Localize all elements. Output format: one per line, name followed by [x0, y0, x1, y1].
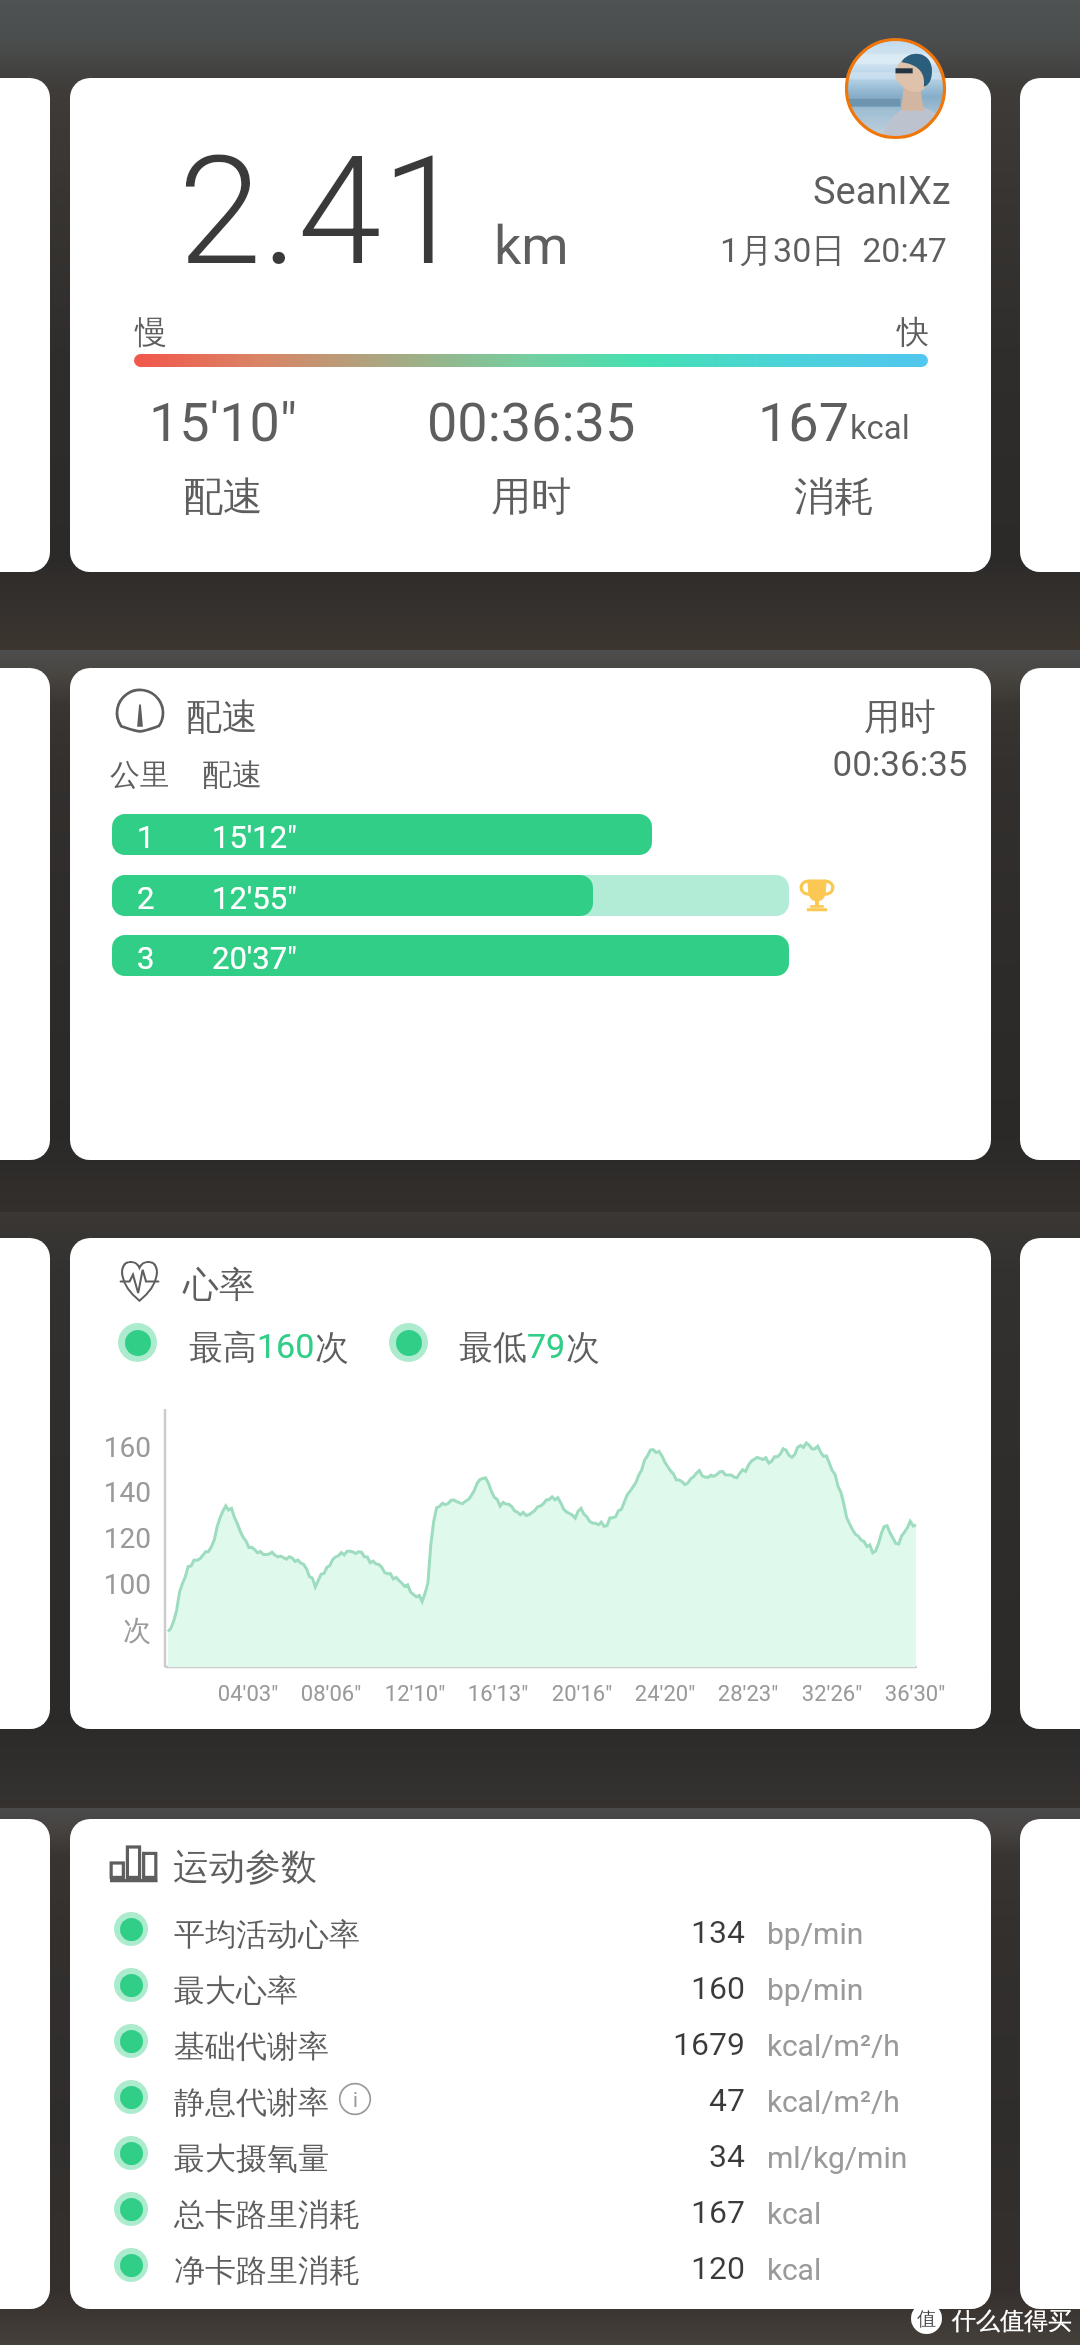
- staticText: 04'03": [188, 1681, 308, 1707]
- other: Heart rate: [117, 1258, 162, 1303]
- staticText: 配速: [202, 756, 262, 794]
- staticText: 最大摄氧量: [174, 2139, 329, 2178]
- staticText: 平均活动心率: [174, 1915, 360, 1954]
- staticText: kcal: [767, 2252, 822, 2287]
- button[interactable]: 静息代谢率: [70, 2069, 991, 2125]
- staticText: bp/min: [767, 1972, 864, 2007]
- staticText: 最大心率: [174, 1971, 298, 2010]
- button[interactable]: Pace: [70, 668, 991, 1160]
- staticText: 28'23": [688, 1681, 808, 1707]
- button[interactable]: Info: [338, 2082, 372, 2116]
- staticText: 次: [70, 1613, 151, 1648]
- staticText: SeanIXz: [813, 169, 951, 214]
- button[interactable]: 2.41: [70, 78, 991, 572]
- button[interactable]: 3: [112, 935, 789, 976]
- staticText: 慢: [135, 312, 167, 352]
- staticText: kcal/m²/h: [767, 2028, 900, 2063]
- staticText: 00:36:35: [427, 391, 636, 454]
- staticText: 47: [545, 2081, 745, 2119]
- staticText: 15'10": [149, 391, 298, 454]
- staticText: 34: [545, 2137, 745, 2175]
- staticText: kcal: [850, 408, 910, 447]
- staticText: 20'16": [522, 1681, 642, 1707]
- staticText: 用时: [800, 694, 991, 739]
- staticText: 用时: [381, 471, 681, 521]
- staticText: 1679: [545, 2025, 745, 2063]
- button[interactable]: Profile photo: [845, 38, 946, 139]
- staticText: 净卡路里消耗: [174, 2251, 360, 2290]
- staticText: bp/min: [767, 1916, 864, 1951]
- staticText: 次: [566, 1326, 600, 1369]
- other: Best lap: [795, 873, 839, 917]
- staticText: 最高: [189, 1326, 257, 1369]
- staticText: 什么值得买: [952, 2306, 1072, 2336]
- button[interactable]: 1: [112, 814, 652, 855]
- staticText: 120: [70, 1522, 151, 1555]
- staticText: 基础代谢率: [174, 2027, 329, 2066]
- staticText: 20'37": [212, 940, 298, 976]
- staticText: 160: [70, 1431, 151, 1464]
- staticText: 08'06": [271, 1681, 391, 1707]
- staticText: 值: [917, 2307, 936, 2331]
- staticText: 快: [897, 312, 929, 352]
- staticText: 静息代谢率: [174, 2083, 329, 2122]
- staticText: 次: [315, 1326, 349, 1369]
- staticText: 134: [545, 1913, 745, 1951]
- staticText: 12'10": [355, 1681, 475, 1707]
- staticText: 24'20": [605, 1681, 725, 1707]
- staticText: 100: [70, 1568, 151, 1601]
- button[interactable]: 最大心率: [70, 1957, 991, 2013]
- staticText: 运动参数: [173, 1844, 317, 1889]
- staticText: 12'55": [212, 880, 298, 916]
- staticText: 配速: [186, 694, 258, 739]
- staticText: i: [353, 2088, 358, 2111]
- other: Parameters: [110, 1843, 168, 1883]
- staticText: 心率: [183, 1262, 255, 1307]
- staticText: 120: [545, 2249, 745, 2287]
- staticText: 00:36:35: [800, 744, 991, 785]
- staticText: 79: [527, 1326, 566, 1366]
- staticText: 140: [70, 1476, 151, 1509]
- staticText: kcal/m²/h: [767, 2084, 900, 2119]
- staticText: 15'12": [212, 819, 298, 855]
- staticText: kcal: [767, 2196, 822, 2231]
- button[interactable]: Parameters: [70, 1819, 991, 2309]
- staticText: 32'26": [772, 1681, 892, 1707]
- staticText: 消耗: [684, 471, 984, 521]
- staticText: 1月30日 20:47: [720, 229, 947, 272]
- button[interactable]: 净卡路里消耗: [70, 2237, 991, 2293]
- staticText: 167: [545, 2193, 745, 2231]
- button[interactable]: 平均活动心率: [70, 1901, 991, 1957]
- staticText: 36'30": [855, 1681, 975, 1707]
- staticText: ml/kg/min: [767, 2140, 908, 2175]
- staticText: 3: [137, 940, 155, 976]
- staticText: 最低: [459, 1326, 527, 1369]
- staticText: 配速: [73, 471, 373, 521]
- staticText: 1: [137, 819, 155, 855]
- staticText: 总卡路里消耗: [174, 2195, 360, 2234]
- staticText: 公里: [110, 756, 170, 794]
- staticText: 160: [257, 1326, 315, 1366]
- button[interactable]: 基础代谢率: [70, 2013, 991, 2069]
- button[interactable]: 总卡路里消耗: [70, 2181, 991, 2237]
- staticText: 167: [758, 391, 850, 454]
- staticText: 2.41: [178, 123, 466, 300]
- button[interactable]: 2: [112, 875, 789, 916]
- button[interactable]: Heart rate: [70, 1238, 991, 1729]
- staticText: km: [494, 214, 569, 277]
- staticText: 2: [137, 880, 155, 916]
- button[interactable]: 最大摄氧量: [70, 2125, 991, 2181]
- other: Pace: [115, 690, 165, 734]
- staticText: 16'13": [438, 1681, 558, 1707]
- staticText: 160: [545, 1969, 745, 2007]
